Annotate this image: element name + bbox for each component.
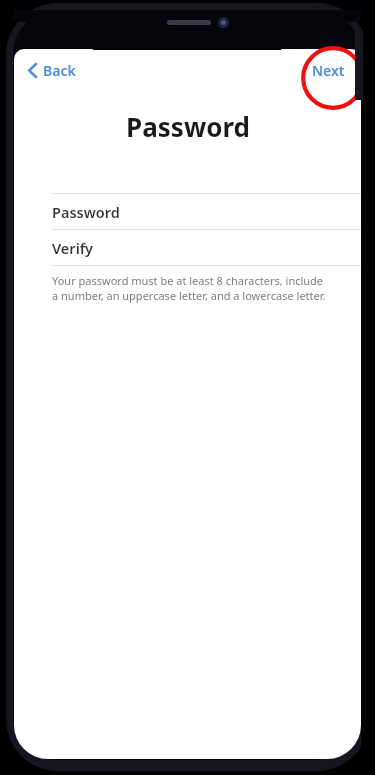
button[interactable]: Verify [14,230,361,265]
staticText: Password [126,109,250,144]
staticText: Next [312,61,345,80]
other: Highlight around Next [301,46,365,110]
staticText: Back [43,61,76,80]
button[interactable]: Back [22,55,82,86]
button[interactable]: Next [306,55,351,86]
staticText: Your password must be at least 8 charact… [52,273,331,303]
button[interactable]: Password [14,194,361,229]
staticText: Verify [52,238,94,258]
staticText: Password [52,202,120,222]
